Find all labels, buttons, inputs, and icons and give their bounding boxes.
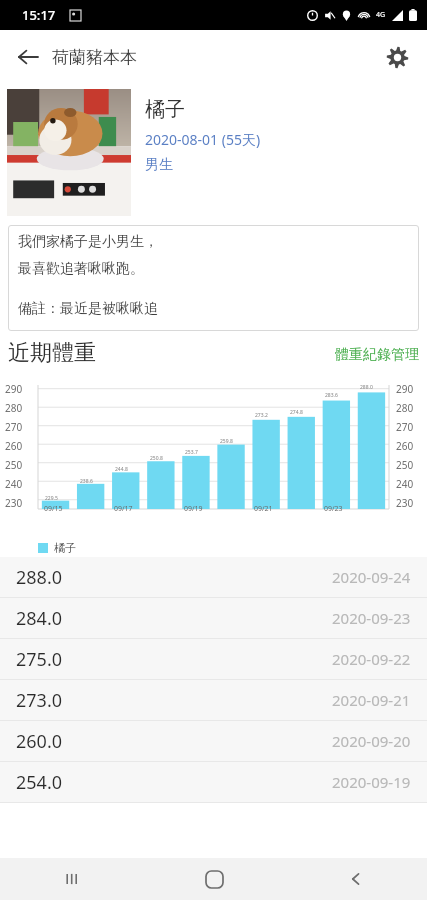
staticText: 288.0 <box>16 565 63 590</box>
button[interactable]: 275.0 <box>0 639 427 680</box>
staticText: 250.8 <box>150 455 163 462</box>
staticText: 近期體重 <box>8 339 96 367</box>
staticText: 230 <box>396 496 414 510</box>
button[interactable]: 260.0 <box>0 721 427 762</box>
staticText: 橘子 <box>54 541 76 555</box>
staticText: 290 <box>396 382 414 396</box>
button[interactable]: Recent apps <box>0 858 143 900</box>
staticText: 我們家橘子是小男生， <box>18 233 158 251</box>
staticText: 230 <box>5 496 23 510</box>
staticText: 備註：最近是被啾啾追 <box>18 300 158 318</box>
staticText: 290 <box>5 382 23 396</box>
staticText: 273.2 <box>255 412 268 419</box>
staticText: 2020-09-21 <box>332 690 411 710</box>
staticText: 09/15 <box>44 504 63 514</box>
staticText: 2020-09-20 <box>332 731 411 751</box>
staticText: 2020-09-24 <box>332 567 411 587</box>
staticText: 260.0 <box>16 729 63 754</box>
staticText: 2020-09-19 <box>332 772 411 792</box>
staticText: 最喜歡追著啾啾跑。 <box>18 260 144 278</box>
button[interactable]: 284.0 <box>0 598 427 639</box>
staticText: 09/17 <box>114 504 133 514</box>
staticText: 238.6 <box>80 478 93 485</box>
staticText: 橘子 <box>145 97 185 122</box>
staticText: 250 <box>5 458 23 472</box>
staticText: 274.8 <box>290 409 303 416</box>
staticText: 254.0 <box>16 770 63 795</box>
staticText: 260 <box>5 439 23 453</box>
staticText: 280 <box>396 401 414 415</box>
staticText: 259.8 <box>220 438 233 445</box>
staticText: 240 <box>5 477 23 491</box>
button[interactable]: 273.0 <box>0 680 427 721</box>
button[interactable]: Settings <box>377 37 417 77</box>
staticText: 荷蘭豬本本 <box>52 47 137 68</box>
staticText: 270 <box>396 420 414 434</box>
staticText: 260 <box>396 439 414 453</box>
staticText: 250 <box>396 458 414 472</box>
staticText: 280 <box>5 401 23 415</box>
staticText: 253.7 <box>185 449 198 456</box>
button[interactable]: Back <box>10 39 46 75</box>
staticText: 09/21 <box>254 504 273 514</box>
button[interactable]: 288.0 <box>0 557 427 598</box>
staticText: 2020-09-22 <box>332 649 411 669</box>
staticText: 男生 <box>145 156 173 174</box>
staticText: 2020-09-23 <box>332 608 411 628</box>
staticText: 288.0 <box>360 384 373 391</box>
staticText: 4G <box>376 10 386 20</box>
button[interactable]: Home <box>143 858 285 900</box>
button[interactable]: 體重紀錄管理 <box>335 346 419 367</box>
staticText: 273.0 <box>16 688 63 713</box>
button[interactable]: 254.0 <box>0 762 427 803</box>
staticText: 體重紀錄管理 <box>335 346 419 364</box>
button[interactable]: Back <box>285 858 427 900</box>
staticText: 275.0 <box>16 647 63 672</box>
staticText: 2020-08-01 (55天) <box>145 130 261 149</box>
staticText: 15:17 <box>22 6 56 24</box>
staticText: 229.5 <box>45 495 58 502</box>
staticText: 270 <box>5 420 23 434</box>
staticText: 283.6 <box>325 392 338 399</box>
staticText: 244.8 <box>115 466 128 473</box>
staticText: 09/23 <box>324 504 343 514</box>
staticText: 284.0 <box>16 606 63 631</box>
staticText: 240 <box>396 477 414 491</box>
staticText: 09/19 <box>184 504 203 514</box>
